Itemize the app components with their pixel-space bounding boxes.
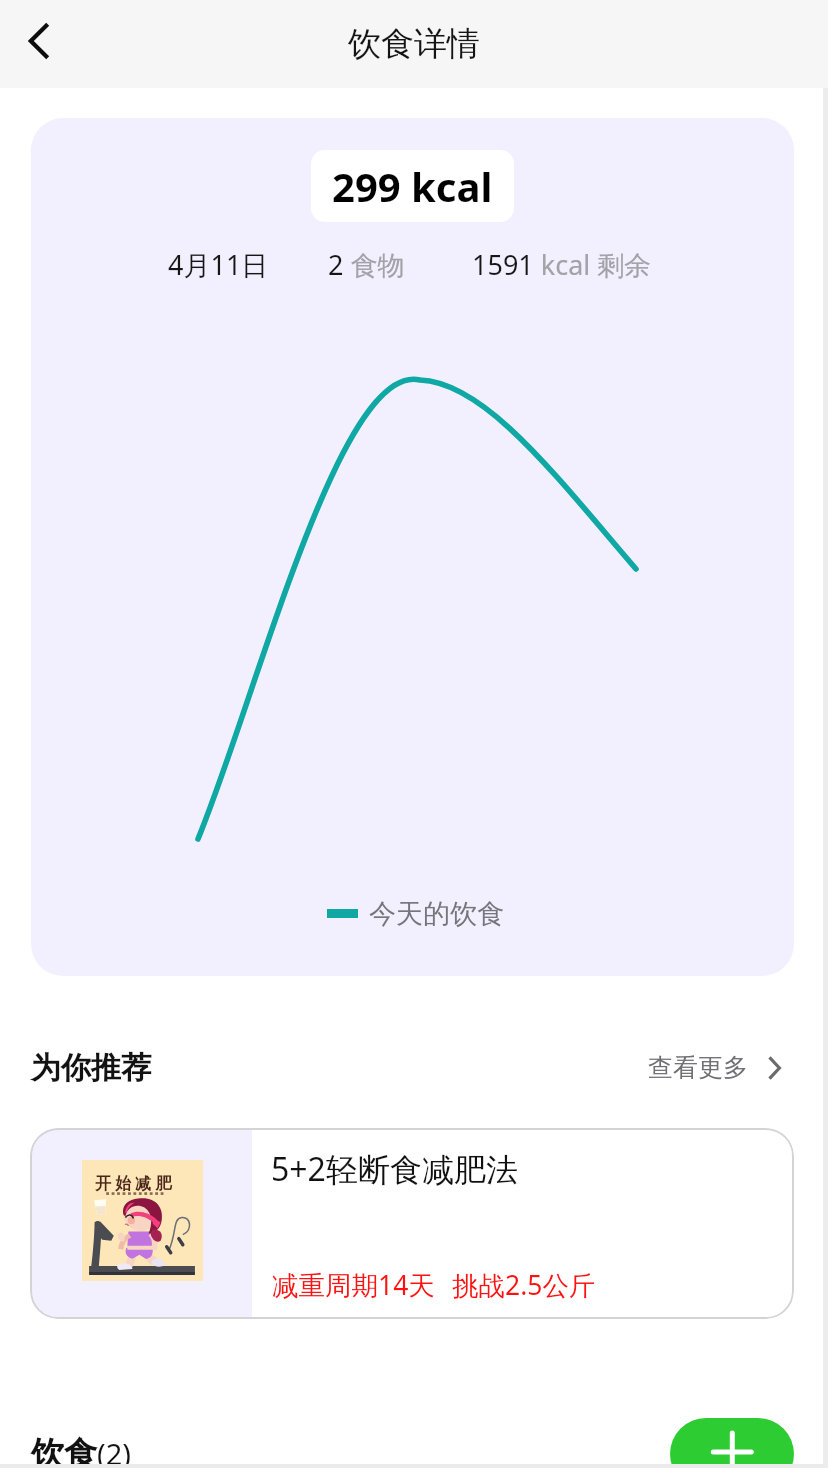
- button[interactable]: 299 kcal: [31, 118, 794, 976]
- staticText: 299 kcal: [332, 159, 493, 213]
- button[interactable]: 开 始 减 肥: [30, 1128, 794, 1319]
- staticText: 饮食(2): [31, 1433, 131, 1468]
- button[interactable]: 饮食(2): [31, 1433, 131, 1468]
- staticText: 今天的饮食: [369, 897, 504, 931]
- staticText: 查看更多: [648, 1052, 748, 1083]
- button[interactable]: Add food: [670, 1418, 794, 1468]
- staticText: 饮食详情: [348, 23, 480, 65]
- staticText: 4月11日: [168, 246, 269, 283]
- staticText: 2 食物: [328, 246, 405, 283]
- staticText: 5+2轻断食减肥法: [271, 1147, 518, 1191]
- staticText: 减重周期14天: [272, 1267, 435, 1303]
- button[interactable]: 查看更多: [640, 1044, 789, 1091]
- staticText: 1591 kcal 剩余: [472, 246, 652, 283]
- staticText: 挑战2.5公斤: [452, 1267, 596, 1303]
- button[interactable]: Back: [0, 0, 81, 84]
- staticText: 为你推荐: [31, 1049, 151, 1087]
- staticText: 开 始 减 肥: [95, 1172, 172, 1194]
